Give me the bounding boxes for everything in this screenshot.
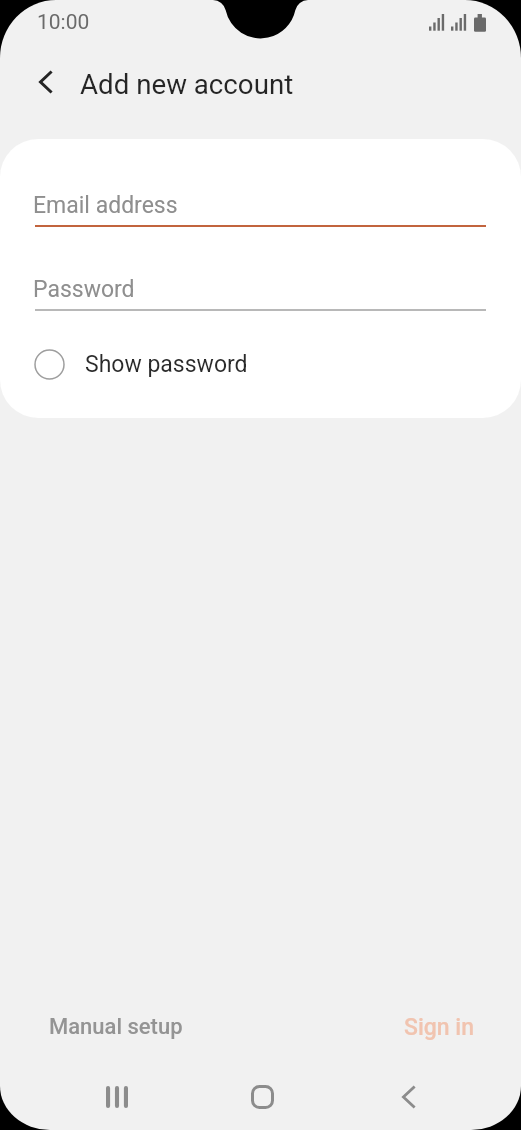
button[interactable]: Manual setup [49, 1014, 183, 1040]
staticText: Password [33, 276, 135, 303]
staticText: Add new account [80, 68, 294, 100]
button[interactable]: Recent apps [71, 1064, 162, 1130]
staticText: 10:00 [37, 10, 90, 35]
staticText: Email address [33, 192, 178, 219]
button[interactable]: Sign in [404, 1014, 475, 1041]
button[interactable]: Home [217, 1064, 308, 1130]
staticText: Show password [85, 351, 248, 378]
button[interactable]: Show password [0, 339, 521, 389]
button[interactable]: Back [22, 59, 68, 105]
button[interactable]: Back [363, 1064, 454, 1130]
